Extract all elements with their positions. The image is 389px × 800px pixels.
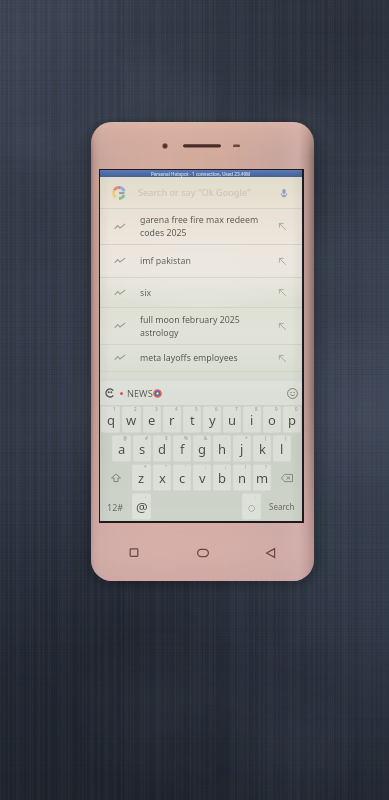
staticText: codes 2025 <box>140 227 187 239</box>
staticText: ( <box>265 435 267 441</box>
staticText: 12# <box>107 501 124 513</box>
button[interactable]: f <box>172 434 192 463</box>
button[interactable]: Insert suggestion <box>277 321 288 332</box>
staticText: r <box>169 411 175 429</box>
button[interactable]: e <box>142 405 162 434</box>
button[interactable]: Insert suggestion <box>277 256 288 267</box>
staticText: 4 <box>175 406 178 412</box>
button[interactable]: Recents <box>126 545 142 561</box>
button[interactable]: r <box>162 405 182 434</box>
button[interactable]: b <box>212 463 232 492</box>
staticText: , <box>145 493 147 499</box>
staticText: NEWS <box>127 387 153 400</box>
button[interactable]: i <box>242 405 262 434</box>
staticText: @ <box>123 435 128 441</box>
staticText: t <box>190 411 195 429</box>
button[interactable]: n <box>232 463 252 492</box>
staticText: o <box>268 411 276 429</box>
staticText: astrology <box>140 327 179 339</box>
button[interactable]: w <box>121 405 142 434</box>
button[interactable]: l <box>272 434 292 463</box>
button[interactable]: x <box>152 463 172 492</box>
button[interactable]: o <box>262 405 282 434</box>
button[interactable]: m <box>252 463 272 492</box>
button[interactable]: imf pakistan <box>100 245 302 277</box>
staticText: j <box>240 440 244 458</box>
staticText: - <box>225 435 227 441</box>
button[interactable]: meta layoffs employees <box>100 345 302 371</box>
button[interactable]: Backspace <box>272 463 302 492</box>
staticText: imf pakistan <box>140 255 191 267</box>
button[interactable]: q <box>100 405 121 434</box>
button[interactable]: Insert suggestion <box>277 221 288 232</box>
button[interactable]: d <box>152 434 172 463</box>
button[interactable]: Insert suggestion <box>277 353 288 364</box>
button[interactable]: t <box>182 405 202 434</box>
staticText: ) <box>285 435 287 441</box>
button[interactable]: Voice search <box>277 186 291 200</box>
button[interactable]: Insert suggestion <box>277 287 288 298</box>
button[interactable]: Emoji <box>287 388 298 399</box>
staticText: " <box>165 464 167 470</box>
staticText: @ <box>136 498 148 516</box>
button[interactable]: z <box>131 463 152 492</box>
staticText: 3 <box>155 406 158 412</box>
staticText: meta layoffs employees <box>140 352 238 364</box>
staticText: m <box>256 469 269 487</box>
button[interactable]: s <box>132 434 152 463</box>
button[interactable]: h <box>212 434 232 463</box>
button[interactable]: Search or say "Ok Google" <box>100 177 302 208</box>
staticText: 5 <box>195 406 198 412</box>
staticText: z <box>138 469 145 487</box>
staticText: ! <box>245 464 247 470</box>
button[interactable]: @ <box>131 492 152 521</box>
staticText: 8 <box>255 406 258 412</box>
staticText: 2 <box>134 406 137 412</box>
button[interactable]: p <box>282 405 302 434</box>
button[interactable]: y <box>202 405 222 434</box>
staticText: u <box>228 411 237 429</box>
button[interactable]: Back <box>263 545 279 561</box>
staticText: $ <box>165 435 168 441</box>
staticText: k <box>259 440 266 458</box>
button[interactable]: g <box>192 434 212 463</box>
button[interactable]: Search <box>262 492 302 521</box>
staticText: * <box>144 464 147 470</box>
staticText: ◌ <box>248 498 256 516</box>
button[interactable]: Shift <box>100 463 131 492</box>
staticText: v <box>199 469 206 487</box>
button[interactable]: k <box>252 434 272 463</box>
staticText: 7 <box>235 406 238 412</box>
button[interactable]: Symbols <box>100 492 131 521</box>
staticText: x <box>159 469 166 487</box>
button[interactable]: j <box>232 434 252 463</box>
staticText: Personal Hotspot · 1 connection, Used 23… <box>151 171 251 177</box>
staticText: Search or say "Ok Google" <box>138 186 251 199</box>
button[interactable]: ◌ <box>241 492 262 521</box>
button[interactable]: c <box>172 463 192 492</box>
button[interactable]: a <box>111 434 132 463</box>
staticText: i <box>250 411 254 429</box>
staticText: n <box>238 469 247 487</box>
button[interactable]: u <box>222 405 242 434</box>
staticText: . <box>255 493 257 499</box>
staticText: + <box>245 435 248 441</box>
button[interactable]: Gboard settings <box>105 388 115 398</box>
button[interactable]: garena free fire max redeem <box>100 209 302 244</box>
staticText: six <box>140 287 152 299</box>
button[interactable]: full moon february 2025 <box>100 308 302 344</box>
staticText: ; <box>225 464 227 470</box>
staticText: garena free fire max redeem <box>140 214 259 226</box>
staticText: 6 <box>215 406 218 412</box>
staticText: l <box>280 440 284 458</box>
staticText: full moon february 2025 <box>140 314 240 326</box>
staticText: f <box>180 440 185 458</box>
staticText: # <box>145 435 148 441</box>
staticText: : <box>205 464 207 470</box>
staticText: Search <box>269 501 295 512</box>
staticText: ' <box>185 464 187 470</box>
button[interactable]: Home <box>195 545 211 561</box>
button[interactable]: v <box>192 463 212 492</box>
button[interactable]: six <box>100 278 302 307</box>
